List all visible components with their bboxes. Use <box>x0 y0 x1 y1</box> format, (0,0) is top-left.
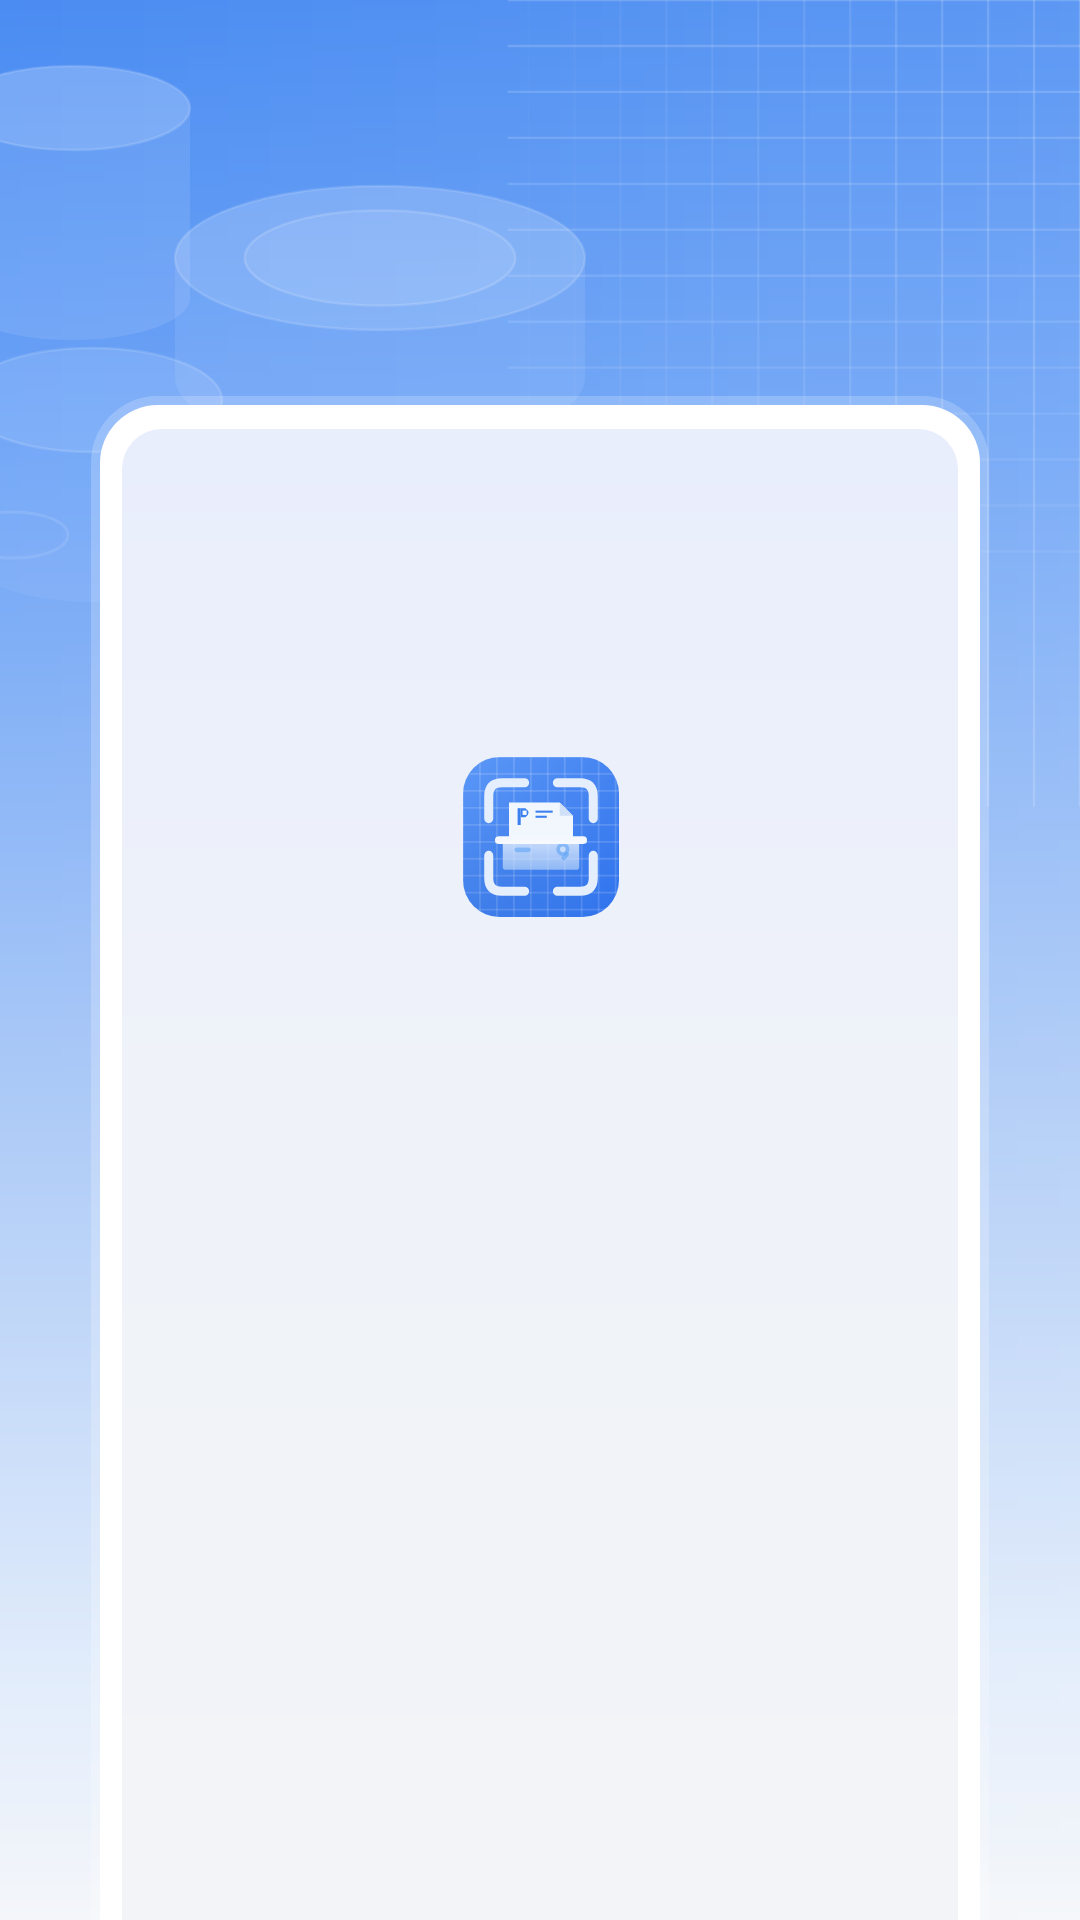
button[interactable]: Invoice scanner app icon <box>463 757 619 917</box>
